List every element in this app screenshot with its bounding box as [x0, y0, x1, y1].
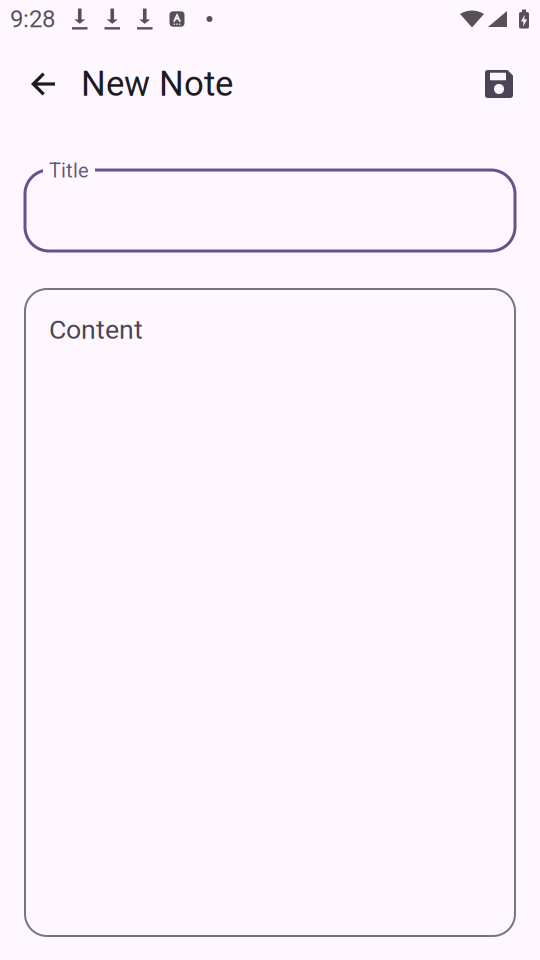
- button[interactable]: Back: [14, 55, 72, 113]
- button[interactable]: Title: [25, 170, 515, 251]
- staticText: New Note: [81, 64, 233, 104]
- button[interactable]: Save: [470, 55, 528, 113]
- staticText: 9:28: [10, 5, 55, 33]
- staticText: Content: [49, 314, 143, 345]
- staticText: Title: [49, 159, 89, 182]
- button[interactable]: Content: [25, 289, 515, 936]
